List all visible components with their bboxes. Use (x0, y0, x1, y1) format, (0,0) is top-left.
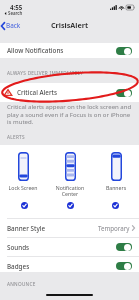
button[interactable]: Badges (0, 257, 139, 275)
staticText: Allow Notifications (7, 46, 64, 55)
staticText: CrisisAlert (51, 20, 89, 30)
button[interactable]: Toggle on (116, 47, 132, 55)
staticText: ALERTS (7, 134, 25, 140)
button[interactable]: Notification Center (47, 152, 93, 197)
button[interactable]: Banner Style (0, 219, 139, 237)
staticText: Sounds (7, 243, 30, 252)
button[interactable]: Sounds (0, 238, 139, 256)
staticText: Critical Alerts (17, 88, 58, 97)
staticText: Temporary (98, 224, 130, 232)
staticText: Banner Style (7, 224, 46, 233)
button[interactable]: Toggle on (116, 89, 132, 97)
button[interactable]: Lock Screen (0, 152, 46, 191)
staticText: Notification Center (54, 184, 86, 197)
button[interactable]: Selected (94, 202, 136, 209)
button[interactable]: Toggle on (116, 243, 132, 251)
staticText: Banners (100, 184, 132, 191)
staticText: Critical alerts appear on the lock scree… (7, 103, 135, 126)
button[interactable]: Banners (93, 152, 139, 191)
staticText: ANNOUNCE (7, 281, 36, 287)
staticText: Search (8, 10, 23, 16)
button[interactable]: Back (0, 20, 24, 31)
button[interactable]: Selected (49, 202, 91, 209)
button[interactable]: Selected (3, 202, 45, 209)
staticText: Badges (7, 262, 30, 271)
staticText: Lock Screen (7, 184, 39, 191)
staticText: Back (6, 21, 21, 30)
button[interactable]: Critical Alerts (0, 83, 139, 102)
staticText: 4:55 (10, 3, 23, 11)
staticText: ALWAYS DELIVER IMMEDIATELY (7, 70, 84, 76)
button[interactable]: Allow Notifications (0, 43, 139, 58)
button[interactable]: Toggle on (116, 262, 132, 270)
